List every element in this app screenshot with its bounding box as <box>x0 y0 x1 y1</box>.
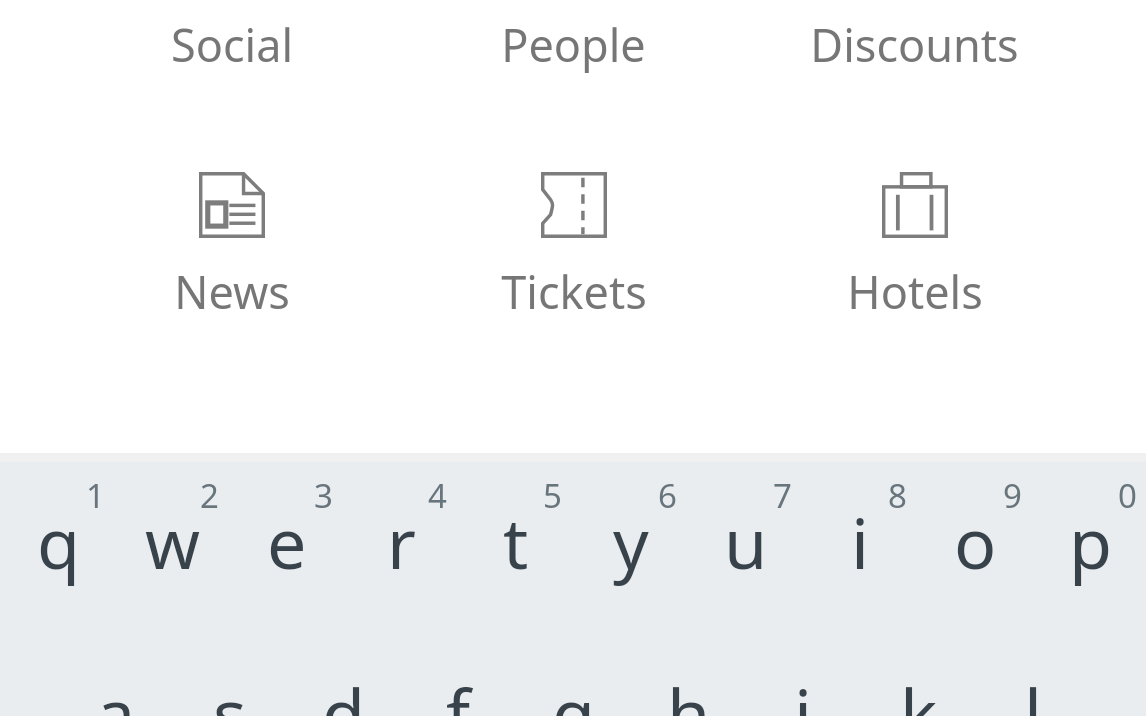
button[interactable]: Hotels <box>744 172 1085 322</box>
button[interactable]: 4 <box>342 471 456 601</box>
button[interactable]: j <box>744 642 859 716</box>
staticText: o <box>954 494 997 589</box>
button[interactable]: a <box>57 642 171 716</box>
staticText: y <box>613 494 649 589</box>
button[interactable]: f <box>399 642 514 716</box>
button[interactable]: l <box>974 642 1089 716</box>
staticText: l <box>1024 665 1043 716</box>
other: Tickets <box>541 172 607 238</box>
staticText: k <box>900 665 938 716</box>
staticText: 9 <box>1003 473 1022 518</box>
staticText: d <box>322 665 366 716</box>
button[interactable]: 8 <box>801 471 916 601</box>
button[interactable]: 9 <box>916 471 1031 601</box>
button[interactable]: Tickets <box>403 172 744 322</box>
staticText: 6 <box>658 473 677 518</box>
staticText: People <box>501 14 646 75</box>
staticText: u <box>724 494 768 589</box>
staticText: r <box>387 494 416 589</box>
button[interactable]: 2 <box>114 471 228 601</box>
other: News <box>199 172 265 238</box>
button[interactable]: k <box>859 642 974 716</box>
staticText: 8 <box>888 473 907 518</box>
staticText: 3 <box>314 473 333 518</box>
staticText: t <box>503 494 529 589</box>
staticText: p <box>1069 494 1113 589</box>
staticText: Discounts <box>810 14 1019 75</box>
staticText: 7 <box>773 473 792 518</box>
staticText: Hotels <box>847 261 983 322</box>
button[interactable]: g <box>514 642 629 716</box>
staticText: j <box>794 665 813 716</box>
staticText: 2 <box>200 473 219 518</box>
button[interactable]: Discounts <box>744 0 1085 86</box>
staticText: 5 <box>543 473 562 518</box>
staticText: e <box>267 494 307 589</box>
staticText: s <box>213 665 247 716</box>
staticText: g <box>552 665 596 716</box>
staticText: Social <box>171 14 293 75</box>
staticText: 4 <box>428 473 447 518</box>
button[interactable]: 1 <box>0 471 114 601</box>
staticText: i <box>851 494 870 589</box>
staticText: w <box>145 494 201 589</box>
staticText: Tickets <box>501 261 647 322</box>
button[interactable]: 5 <box>456 471 571 601</box>
button[interactable]: s <box>171 642 285 716</box>
button[interactable]: 3 <box>228 471 342 601</box>
button[interactable]: h <box>629 642 744 716</box>
other: Hotels <box>882 172 948 238</box>
button[interactable]: News <box>61 172 403 322</box>
staticText: News <box>174 261 290 322</box>
button[interactable]: 6 <box>571 471 686 601</box>
staticText: h <box>667 665 711 716</box>
staticText: 1 <box>86 473 105 518</box>
staticText: q <box>37 494 81 589</box>
button[interactable]: 7 <box>686 471 801 601</box>
button[interactable]: d <box>285 642 399 716</box>
staticText: a <box>96 665 136 716</box>
button[interactable]: Social <box>61 0 403 86</box>
button[interactable]: People <box>403 0 744 86</box>
staticText: f <box>446 665 471 716</box>
staticText: 0 <box>1118 473 1137 518</box>
button[interactable]: 0 <box>1031 471 1146 601</box>
